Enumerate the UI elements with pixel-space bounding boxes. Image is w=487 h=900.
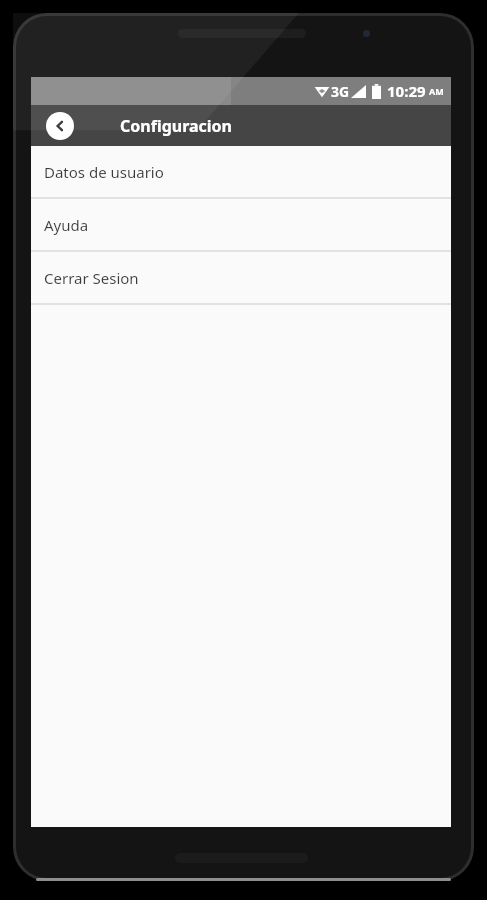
- button[interactable]: Ayuda: [31, 199, 451, 250]
- staticText: AM: [429, 85, 444, 97]
- staticText: Ayuda: [44, 215, 89, 235]
- button[interactable]: Datos de usuario: [31, 146, 451, 197]
- button[interactable]: Back: [46, 112, 74, 140]
- staticText: Cerrar Sesion: [44, 268, 139, 288]
- staticText: Datos de usuario: [44, 162, 164, 182]
- button[interactable]: Cerrar Sesion: [31, 252, 451, 303]
- staticText: Configuracion: [120, 115, 233, 137]
- staticText: 3G: [331, 82, 350, 101]
- staticText: 10:29: [387, 81, 426, 101]
